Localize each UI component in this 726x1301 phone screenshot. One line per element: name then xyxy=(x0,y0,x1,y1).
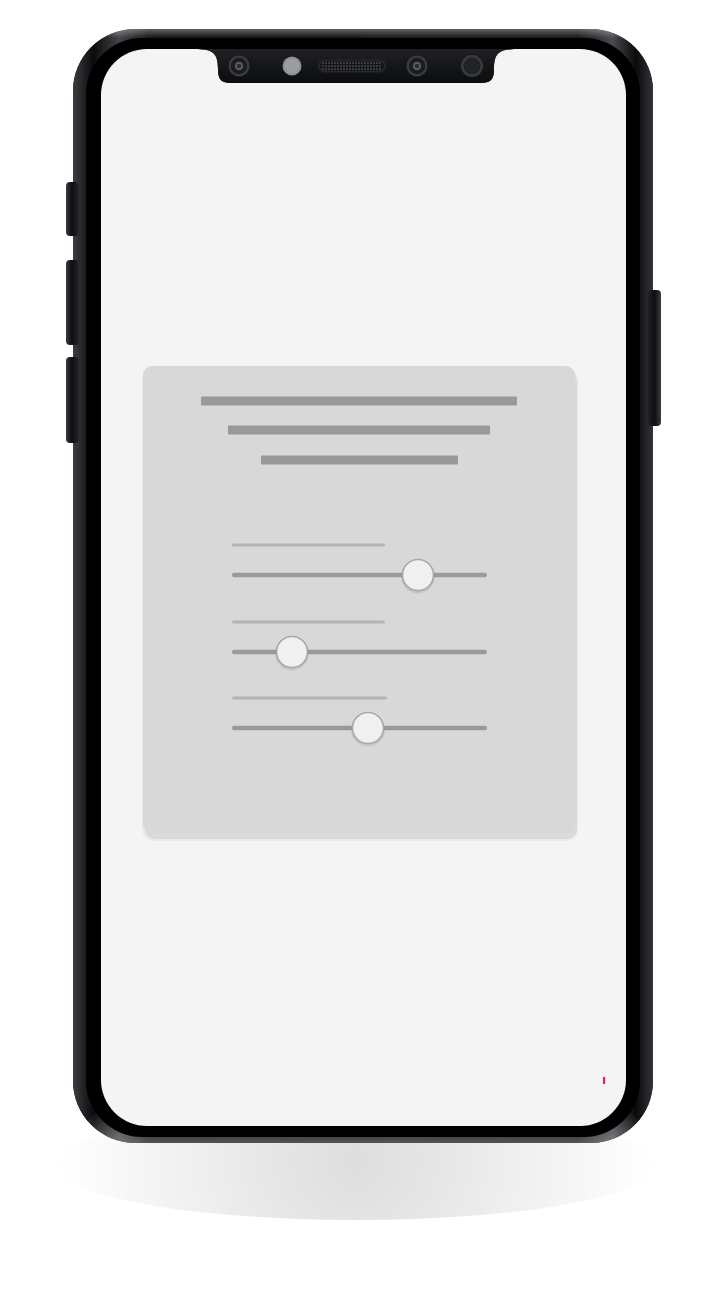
button[interactable]: Audio settings panel on phone xyxy=(0,0,726,1301)
